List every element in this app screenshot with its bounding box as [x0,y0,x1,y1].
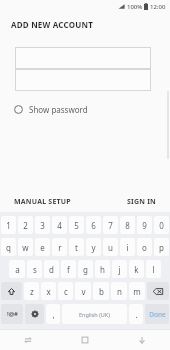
staticText: 3 [40,220,45,231]
button[interactable]: 1 [1,216,16,234]
staticText: g [83,264,88,275]
staticText: h [100,264,105,275]
button[interactable]: q [1,238,16,256]
button[interactable]: Keyboard settings [25,304,44,324]
button[interactable]: x [41,282,56,300]
staticText: , [52,309,55,320]
staticText: Show password [29,104,88,115]
staticText: p [159,242,164,253]
button[interactable]: k [129,260,144,278]
staticText: j [118,264,121,275]
button[interactable]: n [111,282,127,300]
button[interactable]: j [112,260,127,278]
button[interactable]: 9 [137,216,152,234]
button[interactable]: g [78,260,93,278]
staticText: 12:00 [150,3,166,11]
staticText: !@# [7,310,18,318]
staticText: a [15,264,20,275]
staticText: x [46,286,51,297]
button[interactable]: Backspace [147,282,169,300]
staticText: 0 [159,220,164,231]
staticText: n [117,286,122,297]
staticText: 100% [127,3,143,11]
button[interactable]: f [61,260,76,278]
button[interactable]: l [146,260,161,278]
button[interactable]: m [129,282,145,300]
button[interactable]: 8 [120,216,135,234]
staticText: 1 [6,220,11,231]
button[interactable]: c [58,282,73,300]
staticText: MANUAL SETUP [14,197,71,207]
staticText: z [30,286,34,297]
staticText: 7 [108,220,113,231]
staticText: 8 [125,220,130,231]
button[interactable]: 3 [35,216,50,234]
button[interactable]: , [46,304,60,324]
button[interactable]: !@# [1,304,23,324]
staticText: 5 [74,220,79,231]
staticText: k [134,264,139,275]
button[interactable]: 6 [86,216,101,234]
staticText: i [126,242,129,253]
button[interactable]: Done [145,304,169,324]
staticText: 9 [142,220,147,231]
staticText: y [91,242,96,253]
button[interactable]: Show password [14,100,88,118]
button[interactable]: 2 [18,216,33,234]
button[interactable]: Shift [1,282,22,300]
button[interactable]: Home [56,330,113,350]
button[interactable]: MANUAL SETUP [10,194,75,210]
staticText: r [58,242,62,253]
button[interactable]: Back [113,330,170,350]
button[interactable]: 7 [103,216,118,234]
staticText: l [152,264,155,275]
staticText: m [133,286,141,297]
staticText: f [67,264,70,275]
button[interactable]: Recents [0,330,56,350]
staticText: d [49,264,54,275]
button[interactable]: 0 [154,216,169,234]
button[interactable]: p [154,238,169,256]
button[interactable]: w [18,238,33,256]
staticText: 6 [91,220,96,231]
button[interactable]: r [52,238,67,256]
staticText: 4 [57,220,62,231]
staticText: . [135,309,138,320]
button[interactable]: t [69,238,84,256]
staticText: 2 [23,220,28,231]
button[interactable]: z [24,282,39,300]
button[interactable]: i [120,238,135,256]
button[interactable] [15,47,151,69]
staticText: b [99,286,104,297]
button[interactable] [15,69,151,91]
button[interactable]: 5 [69,216,84,234]
staticText: w [22,242,29,253]
staticText: v [81,286,86,297]
button[interactable]: o [137,238,152,256]
button[interactable]: b [93,282,109,300]
staticText: Done [149,310,166,319]
button[interactable]: English (UK) [62,304,127,324]
staticText: s [33,264,37,275]
staticText: q [6,242,11,253]
button[interactable]: y [86,238,101,256]
button[interactable]: . [129,304,143,324]
staticText: e [40,242,45,253]
button[interactable]: d [44,260,59,278]
button[interactable]: a [9,260,25,278]
staticText: c [64,286,68,297]
button[interactable]: v [75,282,91,300]
button[interactable]: s [27,260,42,278]
button[interactable]: 4 [52,216,67,234]
staticText: ADD NEW ACCOUNT [11,19,93,30]
staticText: English (UK) [79,311,110,318]
button[interactable]: u [103,238,118,256]
staticText: t [75,242,78,253]
button[interactable]: SIGN IN [123,194,160,210]
staticText: u [108,242,113,253]
staticText: SIGN IN [127,197,156,207]
staticText: o [142,242,147,253]
button[interactable]: e [35,238,50,256]
button[interactable]: h [95,260,110,278]
